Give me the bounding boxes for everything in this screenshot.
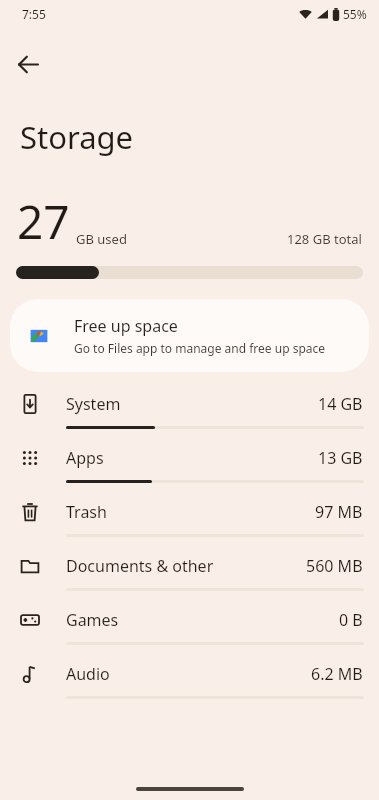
staticText: 7:55 bbox=[22, 6, 46, 22]
staticText: Free up space bbox=[74, 315, 178, 337]
button[interactable]: Audio bbox=[0, 654, 379, 708]
staticText: GB used bbox=[76, 230, 127, 248]
button[interactable]: Trash bbox=[0, 492, 379, 546]
staticText: Storage bbox=[20, 116, 134, 158]
staticText: 55% bbox=[343, 6, 367, 22]
button[interactable]: Free up space bbox=[10, 299, 369, 372]
button[interactable]: Games bbox=[0, 600, 379, 654]
button[interactable]: Apps bbox=[0, 438, 379, 492]
staticText: Games bbox=[66, 609, 339, 631]
staticText: 14 GB bbox=[318, 393, 363, 415]
button[interactable]: Documents & other bbox=[0, 546, 379, 600]
staticText: Go to Files app to manage and free up sp… bbox=[74, 340, 326, 356]
staticText: Documents & other bbox=[66, 555, 306, 577]
staticText: 27 bbox=[17, 190, 70, 253]
staticText: 97 MB bbox=[315, 501, 363, 523]
staticText: 6.2 MB bbox=[311, 663, 363, 685]
staticText: Trash bbox=[66, 501, 315, 523]
button[interactable]: System bbox=[0, 384, 379, 438]
staticText: 560 MB bbox=[306, 555, 363, 577]
staticText: 13 GB bbox=[318, 447, 363, 469]
staticText: 0 B bbox=[339, 609, 363, 631]
staticText: System bbox=[66, 393, 318, 415]
staticText: Audio bbox=[66, 663, 311, 685]
button[interactable]: Back bbox=[6, 42, 50, 86]
staticText: 128 GB total bbox=[287, 230, 362, 248]
staticText: Apps bbox=[66, 447, 318, 469]
